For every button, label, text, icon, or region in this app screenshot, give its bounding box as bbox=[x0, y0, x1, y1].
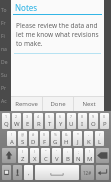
button[interactable]: 6 bbox=[56, 113, 65, 129]
button[interactable]: 8 bbox=[78, 113, 87, 129]
staticText: 2 bbox=[15, 114, 18, 119]
staticText: 5 bbox=[48, 114, 51, 119]
button[interactable]: Please review the data and let me know w… bbox=[16, 21, 99, 48]
button[interactable]: Delete bbox=[96, 148, 109, 163]
staticText: Next bbox=[82, 100, 96, 108]
staticText: V bbox=[55, 155, 59, 163]
staticText: De bbox=[1, 59, 8, 66]
staticText: A bbox=[10, 138, 14, 146]
button[interactable]: # bbox=[29, 131, 38, 146]
staticText: X bbox=[33, 155, 37, 163]
staticText: : bbox=[67, 149, 68, 154]
staticText: * bbox=[77, 132, 79, 137]
staticText: % bbox=[54, 132, 57, 137]
staticText: G bbox=[53, 138, 58, 146]
staticText: M bbox=[87, 155, 93, 163]
staticText: , bbox=[28, 169, 30, 177]
button[interactable]: ( bbox=[18, 148, 28, 163]
staticText: - bbox=[88, 132, 90, 137]
button[interactable]: ; bbox=[74, 148, 83, 163]
staticText: Z bbox=[21, 155, 25, 163]
button[interactable]: Done bbox=[43, 97, 73, 111]
button[interactable]: Next bbox=[74, 97, 104, 111]
staticText: & bbox=[65, 132, 68, 137]
staticText: ) bbox=[34, 149, 36, 154]
staticText: I bbox=[81, 120, 84, 128]
button[interactable]: " bbox=[41, 148, 50, 163]
button[interactable]: Switch keyboard bbox=[2, 165, 11, 180]
staticText: ! bbox=[11, 132, 12, 137]
button[interactable]: ' bbox=[52, 148, 61, 163]
staticText: 9 bbox=[92, 114, 95, 119]
button[interactable]: * bbox=[73, 131, 82, 146]
button[interactable]: Remove bbox=[11, 97, 42, 111]
button[interactable]: Voice input bbox=[13, 165, 22, 180]
button[interactable]: Space bbox=[35, 165, 79, 180]
staticText: R bbox=[37, 120, 41, 128]
staticText: S bbox=[21, 138, 25, 146]
button[interactable]: - bbox=[84, 131, 93, 146]
staticText: na bbox=[1, 46, 7, 53]
button[interactable]: 12# bbox=[81, 165, 94, 180]
staticText: 12# bbox=[83, 170, 92, 176]
staticText: U bbox=[69, 120, 74, 128]
button[interactable]: : bbox=[63, 148, 72, 163]
staticText: B bbox=[66, 155, 70, 163]
staticText: Ac bbox=[1, 98, 7, 105]
staticText: T bbox=[48, 120, 52, 128]
staticText: 0 bbox=[103, 114, 106, 119]
staticText: E bbox=[26, 120, 30, 128]
staticText: / bbox=[99, 132, 101, 137]
staticText: Fi bbox=[1, 33, 5, 40]
staticText: $ bbox=[43, 132, 46, 137]
button[interactable]: 2 bbox=[12, 113, 21, 129]
button[interactable]: Shift bbox=[2, 148, 16, 163]
staticText: 4 bbox=[37, 114, 40, 119]
button[interactable]: 1 bbox=[2, 113, 10, 129]
staticText: Done bbox=[50, 100, 66, 108]
button[interactable]: % bbox=[51, 131, 60, 146]
staticText: " bbox=[45, 149, 47, 154]
staticText: ( bbox=[22, 149, 24, 154]
staticText: # bbox=[32, 132, 35, 137]
button[interactable]: ) bbox=[30, 148, 39, 163]
staticText: O bbox=[91, 120, 96, 128]
staticText: 3 bbox=[26, 114, 29, 119]
staticText: Remove bbox=[15, 100, 38, 108]
staticText: D bbox=[31, 138, 36, 146]
staticText: H bbox=[64, 138, 69, 146]
button[interactable]: & bbox=[62, 131, 71, 146]
button[interactable]: 0 bbox=[100, 113, 109, 129]
staticText: Su bbox=[1, 72, 7, 79]
staticText: Q bbox=[4, 120, 9, 128]
staticText: 7 bbox=[70, 114, 73, 119]
staticText: F bbox=[43, 138, 47, 146]
staticText: Fr bbox=[1, 20, 6, 27]
button[interactable]: @ bbox=[18, 131, 27, 146]
staticText: C bbox=[44, 155, 48, 163]
staticText: ' bbox=[56, 149, 57, 154]
staticText: Pr bbox=[1, 85, 7, 92]
button[interactable]: 9 bbox=[89, 113, 98, 129]
staticText: K bbox=[87, 138, 91, 146]
staticText: ! bbox=[89, 149, 90, 154]
staticText: @ bbox=[21, 132, 25, 137]
button[interactable]: 3 bbox=[23, 113, 32, 129]
button[interactable]: ! bbox=[7, 131, 16, 146]
button[interactable]: 5 bbox=[45, 113, 54, 129]
staticText: Please review the data and let me know w… bbox=[16, 21, 99, 48]
staticText: Notes bbox=[15, 2, 38, 13]
staticText: P bbox=[103, 120, 107, 128]
staticText: W bbox=[14, 120, 20, 128]
button[interactable]: ! bbox=[85, 148, 94, 163]
staticText: To bbox=[1, 7, 7, 14]
staticText: 6 bbox=[59, 114, 62, 119]
button[interactable]: / bbox=[95, 131, 104, 146]
button[interactable]: , bbox=[24, 165, 33, 180]
button[interactable]: $ bbox=[40, 131, 49, 146]
staticText: N bbox=[76, 155, 81, 163]
staticText: J bbox=[77, 138, 79, 146]
button[interactable]: 7 bbox=[67, 113, 76, 129]
button[interactable]: 4 bbox=[34, 113, 43, 129]
button[interactable]: Enter bbox=[96, 165, 109, 180]
